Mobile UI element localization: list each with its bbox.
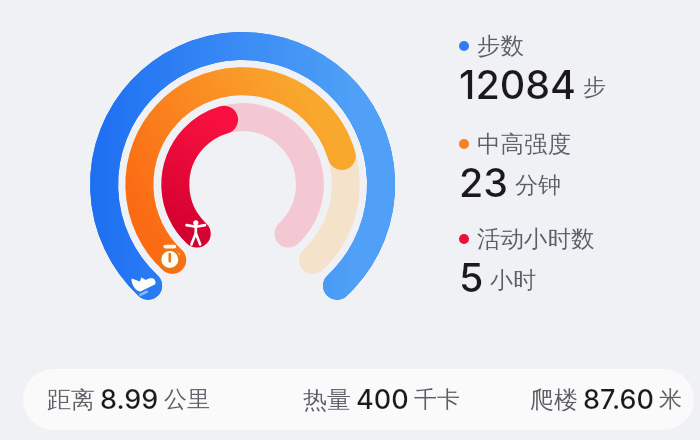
staticText: 87.60: [583, 383, 654, 416]
button[interactable]: 距离: [23, 369, 694, 430]
staticText: 23: [459, 159, 509, 207]
staticText: 公里: [164, 385, 210, 414]
staticText: 米: [659, 385, 682, 414]
staticText: 分钟: [515, 171, 561, 200]
staticText: 千卡: [414, 385, 460, 414]
staticText: 爬楼: [530, 385, 578, 415]
staticText: 400: [356, 383, 409, 416]
staticText: 步: [583, 73, 606, 102]
staticText: 热量: [303, 385, 351, 415]
staticText: 小时: [490, 266, 536, 295]
staticText: 8.99: [100, 383, 159, 416]
staticText: 12084: [459, 61, 577, 109]
staticText: 活动小时数: [477, 224, 595, 254]
staticText: 步数: [477, 31, 524, 61]
staticText: 中高强度: [477, 129, 571, 159]
staticText: 距离: [47, 385, 95, 415]
staticText: 5: [459, 254, 484, 302]
